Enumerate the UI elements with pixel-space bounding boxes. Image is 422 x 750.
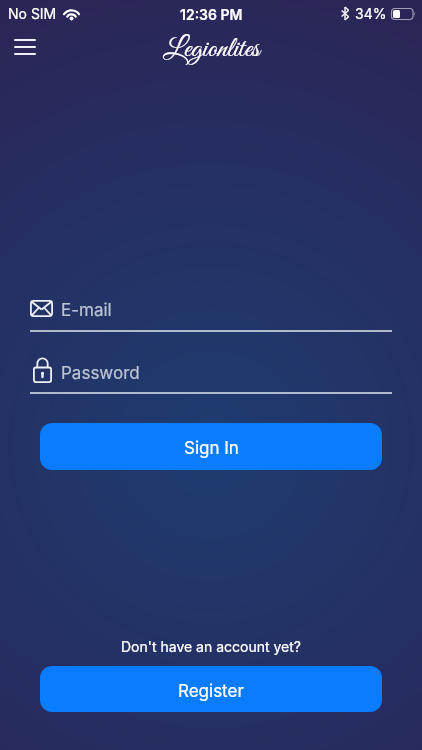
staticText: Legionlites (163, 31, 260, 67)
button[interactable]: Sign In (40, 423, 382, 470)
button[interactable] (8, 33, 42, 61)
button[interactable]: Password (30, 357, 392, 383)
button[interactable]: Register (40, 666, 382, 712)
staticText: Register (178, 681, 244, 702)
staticText: 12:36 PM (180, 6, 243, 23)
staticText: Don't have an account yet? (121, 638, 301, 655)
staticText: Sign In (184, 438, 239, 459)
staticText: E-mail (61, 300, 112, 321)
button[interactable]: E-mail (30, 298, 392, 319)
staticText: Password (61, 363, 140, 384)
staticText: 34% (355, 5, 387, 22)
staticText: No SIM (8, 5, 57, 22)
